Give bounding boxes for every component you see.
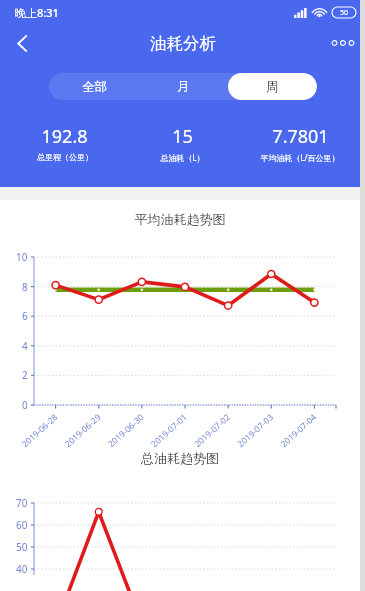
staticText: 总里程（公里）: [37, 152, 93, 162]
button[interactable]: 192.8: [6, 124, 123, 162]
staticText: 7.7801: [272, 124, 329, 149]
staticText: 192.8: [41, 124, 88, 149]
button[interactable]: 月: [139, 73, 228, 100]
staticText: 油耗分析: [150, 33, 216, 54]
staticText: 平均油耗趋势图: [0, 211, 360, 227]
button[interactable]: 全部: [49, 73, 139, 100]
staticText: 全部: [82, 79, 107, 95]
staticText: 平均油耗（L/百公里）: [260, 152, 340, 163]
button[interactable]: 15: [123, 124, 241, 163]
staticText: 50: [340, 8, 349, 18]
staticText: 15: [172, 124, 193, 149]
button[interactable]: Back: [0, 24, 44, 62]
staticText: 周: [266, 79, 279, 95]
button[interactable]: 周: [228, 73, 317, 100]
staticText: 总油耗趋势图: [0, 450, 360, 466]
button[interactable]: 7.7801: [241, 124, 359, 163]
button[interactable]: More options: [321, 24, 365, 62]
staticText: 晚上8:31: [15, 5, 59, 20]
staticText: 月: [177, 79, 190, 95]
staticText: 总油耗（L）: [160, 152, 205, 163]
